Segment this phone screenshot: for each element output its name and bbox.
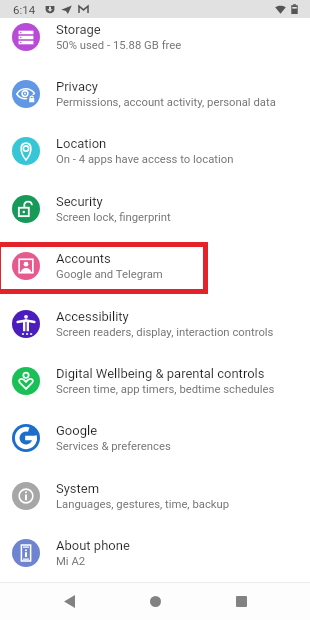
staticText: Permissions, account activity, personal … (56, 96, 276, 109)
button[interactable]: Back (26, 583, 112, 620)
staticText: Google (56, 423, 98, 438)
button[interactable]: Google (0, 409, 310, 466)
staticText: Digital Wellbeing & parental controls (56, 366, 265, 381)
staticText: About phone (56, 538, 130, 553)
button[interactable]: Security (0, 180, 310, 237)
staticText: 50% used - 15.88 GB free (56, 39, 182, 52)
button[interactable]: Home (112, 583, 198, 620)
button[interactable]: Accessibility (0, 295, 310, 352)
staticText: Screen time, app timers, bedtime schedul… (56, 383, 275, 396)
button[interactable]: Location (0, 122, 310, 179)
staticText: 6:14 (13, 3, 36, 16)
staticText: System (56, 481, 100, 496)
staticText: Storage (56, 22, 101, 37)
button[interactable]: About phone (0, 524, 310, 581)
staticText: Privacy (56, 79, 98, 94)
staticText: Services & preferences (56, 440, 171, 453)
staticText: Screen readers, display, interaction con… (56, 326, 274, 339)
staticText: Google and Telegram (56, 268, 163, 281)
staticText: Accounts (56, 251, 111, 266)
button[interactable]: Digital Wellbeing & parental controls (0, 352, 310, 409)
staticText: Accessibility (56, 309, 129, 324)
staticText: Mi A2 (56, 555, 86, 568)
staticText: On - 4 apps have access to location (56, 153, 234, 166)
button[interactable]: Recents (198, 583, 284, 620)
staticText: Security (56, 194, 103, 209)
button[interactable]: System (0, 467, 310, 524)
staticText: Location (56, 136, 107, 151)
staticText: Languages, gestures, time, backup (56, 498, 230, 511)
button[interactable]: Accounts (0, 237, 310, 294)
staticText: Screen lock, fingerprint (56, 211, 171, 224)
button[interactable]: Storage (0, 8, 310, 65)
button[interactable]: Privacy (0, 65, 310, 122)
